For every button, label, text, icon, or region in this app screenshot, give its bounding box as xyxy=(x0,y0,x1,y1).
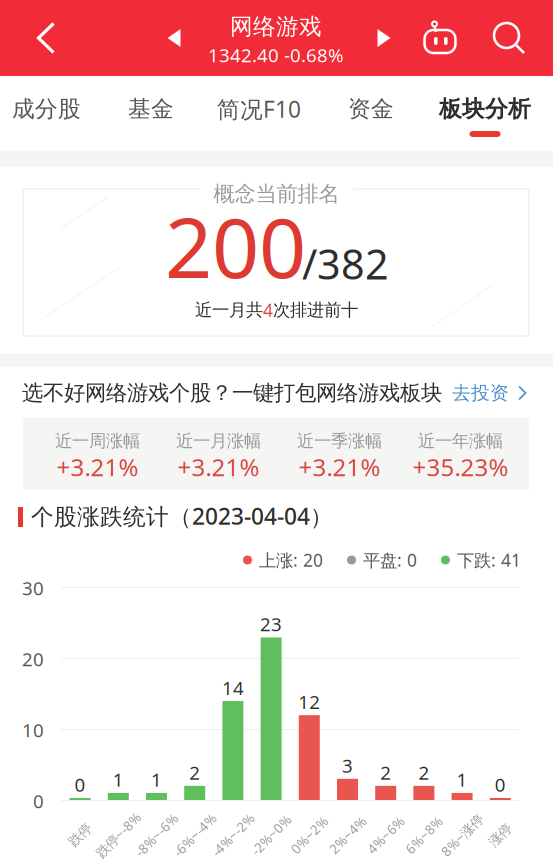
staticText: 0 xyxy=(495,772,506,797)
staticText: 2 xyxy=(380,760,391,785)
staticText: 2 xyxy=(189,760,200,785)
staticText: 网络游戏 xyxy=(230,13,322,40)
staticText: 8%~涨停 xyxy=(436,826,489,844)
button[interactable]: 资金 xyxy=(309,76,433,140)
button[interactable]: Search xyxy=(484,0,536,76)
staticText: 0 xyxy=(33,789,44,813)
staticText: 1342.40 -0.68% xyxy=(208,42,344,67)
button[interactable]: 板块分析 xyxy=(433,76,537,140)
staticText: 近一周涨幅 xyxy=(55,430,140,452)
staticText: 2 xyxy=(418,760,429,785)
staticText: -2%~0% xyxy=(246,826,296,844)
staticText: 1 xyxy=(457,767,468,792)
staticText: /382 xyxy=(302,236,389,291)
staticText: 4%~6% xyxy=(363,826,409,844)
staticText: 14 xyxy=(222,675,244,700)
staticText: +3.21% xyxy=(177,451,259,483)
staticText: 简况F10 xyxy=(217,94,301,124)
button[interactable]: Previous sector xyxy=(156,0,192,76)
staticText: 涨停 xyxy=(487,827,513,843)
button[interactable]: Back xyxy=(16,0,76,76)
staticText: 6%~8% xyxy=(401,826,447,844)
staticText: -4%~-2% xyxy=(206,826,260,844)
staticText: 选不好网络游戏个股？一键打包网络游戏板块 xyxy=(22,380,442,406)
button[interactable]: 选不好网络游戏个股？一键打包网络游戏板块 xyxy=(0,367,553,419)
button[interactable]: 成分股 xyxy=(0,76,93,140)
staticText: 1 xyxy=(151,767,162,792)
button[interactable]: 简况F10 xyxy=(209,76,309,140)
staticText: 个股涨跌统计（2023-04-04） xyxy=(31,501,333,531)
staticText: 0 xyxy=(75,772,86,797)
staticText: +35.23% xyxy=(412,451,508,483)
staticText: 近一年涨幅 xyxy=(418,430,503,452)
staticText: 10 xyxy=(22,718,44,742)
button[interactable]: Next sector xyxy=(366,0,402,76)
staticText: 30 xyxy=(22,576,44,600)
staticText: 跌停~-8% xyxy=(90,826,147,844)
staticText: 跌停 xyxy=(67,827,93,843)
staticText: 12 xyxy=(298,689,320,714)
staticText: 1 xyxy=(113,767,124,792)
staticText: 下跌: 41 xyxy=(457,548,521,571)
staticText: -6%~-4% xyxy=(168,826,222,844)
staticText: 0%~2% xyxy=(286,826,332,844)
staticText: 概念当前排名 xyxy=(213,181,339,207)
staticText: 近一季涨幅 xyxy=(297,430,382,452)
staticText: 20 xyxy=(22,647,44,671)
staticText: 去投资 xyxy=(452,381,509,404)
staticText: 200 xyxy=(165,191,306,301)
staticText: 4 xyxy=(263,298,273,321)
staticText: 近一月涨幅 xyxy=(176,430,261,452)
button[interactable]: 基金 xyxy=(93,76,209,140)
staticText: 成分股 xyxy=(12,95,81,123)
staticText: 板块分析 xyxy=(439,95,531,123)
staticText: 次排进前十 xyxy=(273,299,358,321)
staticText: 3 xyxy=(342,753,353,778)
staticText: 资金 xyxy=(348,95,394,123)
staticText: 近一月共 xyxy=(195,299,263,321)
staticText: 基金 xyxy=(128,95,174,123)
staticText: -8%~-6% xyxy=(129,826,183,844)
staticText: 2%~4% xyxy=(324,826,370,844)
staticText: +3.21% xyxy=(298,451,380,483)
staticText: 23 xyxy=(260,612,282,636)
button[interactable]: AI assistant xyxy=(415,0,467,76)
staticText: 上涨: 20 xyxy=(259,548,323,571)
staticText: 平盘: 0 xyxy=(363,548,417,571)
staticText: +3.21% xyxy=(56,451,138,483)
